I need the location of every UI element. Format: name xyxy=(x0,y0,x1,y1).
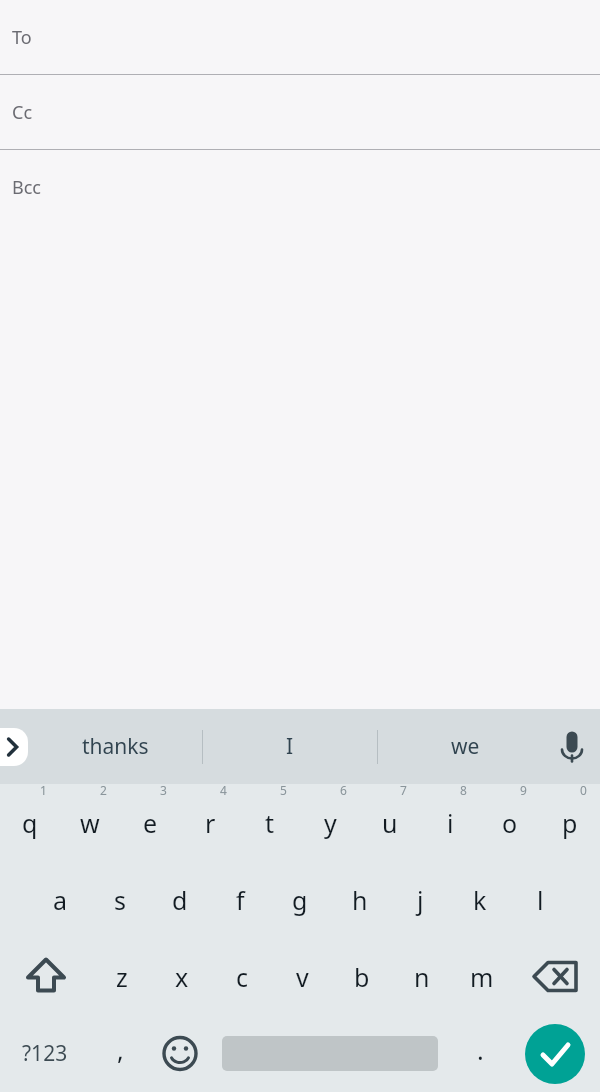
button[interactable]: n xyxy=(392,938,452,1015)
staticText: v xyxy=(296,960,309,994)
button[interactable]: z xyxy=(92,938,152,1015)
button[interactable]: d xyxy=(150,861,210,938)
staticText: i xyxy=(447,806,454,840)
button[interactable]: q xyxy=(0,784,60,861)
button[interactable]: I xyxy=(203,709,377,784)
staticText: b xyxy=(354,960,370,994)
button[interactable]: j xyxy=(390,861,450,938)
staticText: x xyxy=(175,960,189,994)
button[interactable]: Backspace xyxy=(512,938,600,1015)
button[interactable]: a xyxy=(30,861,90,938)
button[interactable]: Shift xyxy=(0,938,92,1015)
button[interactable]: p xyxy=(540,784,600,861)
button[interactable]: we xyxy=(378,709,552,784)
button[interactable]: o xyxy=(480,784,540,861)
button[interactable]: To xyxy=(0,0,600,74)
button[interactable]: Emoji xyxy=(150,1015,210,1092)
staticText: 2 xyxy=(100,782,107,798)
staticText: 4 xyxy=(220,782,227,798)
staticText: 9 xyxy=(520,782,527,798)
staticText: 7 xyxy=(400,782,407,798)
staticText: w xyxy=(80,806,100,840)
staticText: a xyxy=(53,883,68,917)
staticText: j xyxy=(417,883,424,917)
staticText: y xyxy=(324,806,337,840)
button[interactable]: , xyxy=(90,1015,150,1092)
button[interactable]: f xyxy=(210,861,270,938)
button[interactable]: t xyxy=(240,784,300,861)
staticText: q xyxy=(22,806,38,840)
staticText: g xyxy=(292,883,308,917)
staticText: p xyxy=(562,806,578,840)
button[interactable]: r xyxy=(180,784,240,861)
button[interactable]: u xyxy=(360,784,420,861)
button[interactable]: w xyxy=(60,784,120,861)
button[interactable]: x xyxy=(152,938,212,1015)
button[interactable]: c xyxy=(212,938,272,1015)
button[interactable]: k xyxy=(450,861,510,938)
button[interactable]: m xyxy=(452,938,512,1015)
staticText: , xyxy=(117,1033,124,1067)
staticText: 6 xyxy=(340,782,347,798)
button[interactable]: l xyxy=(510,861,570,938)
staticText: f xyxy=(236,883,245,917)
button[interactable]: Space xyxy=(210,1015,450,1092)
staticText: 0 xyxy=(580,782,587,798)
staticText: c xyxy=(236,960,249,994)
button[interactable]: e xyxy=(120,784,180,861)
staticText: we xyxy=(451,732,480,761)
button[interactable]: Bcc xyxy=(0,150,600,224)
staticText: m xyxy=(470,960,494,994)
staticText: h xyxy=(352,883,368,917)
staticText: k xyxy=(473,883,487,917)
button[interactable]: Voice input xyxy=(544,709,600,784)
staticText: thanks xyxy=(82,732,149,761)
button[interactable]: thanks xyxy=(28,709,202,784)
staticText: I xyxy=(286,732,294,761)
button[interactable]: h xyxy=(330,861,390,938)
button[interactable]: y xyxy=(300,784,360,861)
staticText: o xyxy=(502,806,518,840)
button[interactable]: . xyxy=(450,1015,510,1092)
button[interactable]: v xyxy=(272,938,332,1015)
staticText: . xyxy=(477,1033,484,1067)
button[interactable]: g xyxy=(270,861,330,938)
staticText: r xyxy=(205,806,216,840)
staticText: e xyxy=(143,806,158,840)
staticText: Cc xyxy=(12,100,33,125)
staticText: s xyxy=(114,883,126,917)
button[interactable]: Cc xyxy=(0,75,600,149)
button[interactable]: Expand suggestions xyxy=(0,728,28,766)
staticText: t xyxy=(265,806,275,840)
button[interactable]: s xyxy=(90,861,150,938)
staticText: 5 xyxy=(280,782,287,798)
staticText: z xyxy=(116,960,128,994)
button[interactable]: Send xyxy=(525,1024,585,1084)
staticText: l xyxy=(537,883,544,917)
staticText: n xyxy=(414,960,430,994)
button[interactable]: ?123 xyxy=(0,1015,90,1092)
button[interactable]: i xyxy=(420,784,480,861)
staticText: 8 xyxy=(460,782,467,798)
staticText: Bcc xyxy=(12,175,41,200)
staticText: d xyxy=(172,883,188,917)
staticText: 1 xyxy=(40,782,47,798)
staticText: To xyxy=(12,25,32,50)
button[interactable]: b xyxy=(332,938,392,1015)
staticText: 3 xyxy=(160,782,167,798)
staticText: u xyxy=(382,806,398,840)
staticText: ?123 xyxy=(22,1039,68,1068)
